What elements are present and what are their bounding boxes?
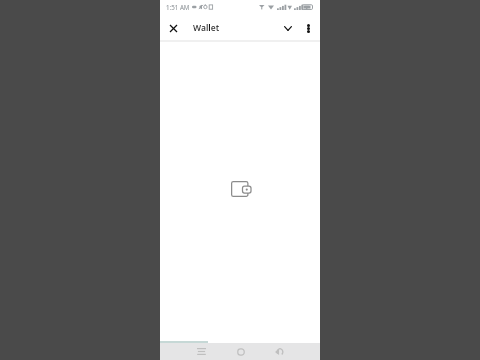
- button[interactable]: Home: [221, 343, 260, 360]
- button[interactable]: Back: [260, 343, 299, 360]
- button[interactable]: More options: [299, 19, 317, 37]
- button[interactable]: Close: [164, 19, 182, 37]
- staticText: Wallet: [193, 22, 220, 34]
- staticText: 1:51 AM: [166, 3, 190, 11]
- button[interactable]: Expand: [279, 19, 297, 37]
- button[interactable]: Recent apps: [182, 343, 221, 360]
